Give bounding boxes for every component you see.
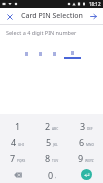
button[interactable]: PIN digit xyxy=(22,52,31,59)
staticText: ABC xyxy=(52,127,59,131)
button[interactable]: PIN digit xyxy=(36,52,45,59)
staticText: GHI xyxy=(18,143,24,147)
button[interactable]: 4 xyxy=(0,134,35,150)
staticText: 7 xyxy=(10,152,16,164)
button[interactable]: PIN digit xyxy=(64,51,81,59)
button[interactable]: PIN digit xyxy=(50,52,59,59)
button[interactable]: Enter xyxy=(81,169,92,180)
staticText: Card PIN Selection xyxy=(21,11,83,21)
staticText: 3 xyxy=(80,120,86,132)
button[interactable]: 8 xyxy=(35,150,69,166)
button[interactable]: 2 xyxy=(35,118,69,134)
button[interactable]: 1 xyxy=(0,118,35,134)
staticText: 9 xyxy=(78,152,84,164)
staticText: PQRS xyxy=(17,159,26,163)
staticText: 2 xyxy=(45,120,51,132)
button[interactable]: Close xyxy=(4,11,15,22)
staticText: DEF xyxy=(87,127,93,131)
staticText: 4 xyxy=(11,136,17,148)
button[interactable]: 0 xyxy=(35,166,69,183)
button[interactable]: Backspace xyxy=(0,166,35,183)
button[interactable]: Next xyxy=(88,11,99,22)
staticText: MNO xyxy=(86,143,94,147)
button[interactable]: 9 xyxy=(69,150,103,166)
staticText: TUV xyxy=(52,159,59,163)
staticText: 6 xyxy=(79,136,85,148)
staticText: WXYZ xyxy=(85,159,94,163)
staticText: JKL xyxy=(53,143,58,147)
staticText: 0 xyxy=(48,169,54,181)
staticText: 5 xyxy=(46,136,52,148)
staticText: 18:12 xyxy=(89,1,101,7)
staticText: , xyxy=(55,173,57,180)
staticText: Select a 4 digit PIN number xyxy=(6,29,77,36)
button[interactable]: 3 xyxy=(69,118,103,134)
button[interactable]: 6 xyxy=(69,134,103,150)
staticText: 8 xyxy=(45,152,51,164)
button[interactable]: 5 xyxy=(35,134,69,150)
button[interactable]: 7 xyxy=(0,150,35,166)
staticText: 1 xyxy=(15,120,21,132)
